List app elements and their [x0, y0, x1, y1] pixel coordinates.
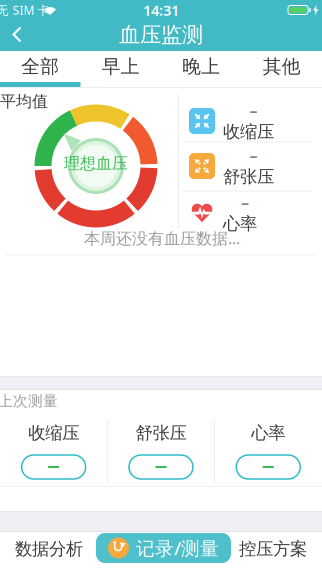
- button[interactable]: 收缩压: [22, 455, 86, 479]
- staticText: 理想血压: [64, 154, 128, 173]
- staticText: 平均值: [0, 92, 48, 111]
- staticText: 记录/测量: [136, 536, 219, 560]
- staticText: 舒张压: [135, 422, 186, 444]
- button[interactable]: 其他: [241, 51, 322, 82]
- staticText: 本周还没有血压数据...: [84, 227, 240, 249]
- staticText: 上次测量: [0, 392, 58, 410]
- staticText: 数据分析: [15, 538, 83, 560]
- button[interactable]: 晚上: [161, 51, 241, 82]
- staticText: 收缩压: [223, 121, 274, 142]
- staticText: 14:31: [143, 0, 179, 20]
- button[interactable]: 心率: [236, 455, 300, 479]
- staticText: 早上: [102, 55, 140, 78]
- button[interactable]: Back: [0, 20, 34, 49]
- button[interactable]: 早上: [80, 51, 161, 82]
- staticText: –: [249, 145, 257, 166]
- staticText: 无 SIM 卡: [0, 2, 49, 18]
- button[interactable]: 全部: [0, 51, 80, 82]
- staticText: 晚上: [182, 55, 220, 78]
- staticText: –: [249, 100, 257, 121]
- button[interactable]: 控压方案: [228, 529, 318, 569]
- staticText: 血压监测: [119, 22, 203, 48]
- button[interactable]: 记录/测量: [96, 533, 231, 563]
- staticText: 心率: [223, 213, 257, 234]
- button[interactable]: 舒张压: [129, 455, 193, 479]
- button[interactable]: 数据分析: [4, 529, 94, 569]
- staticText: 心率: [251, 422, 285, 444]
- staticText: 控压方案: [239, 538, 307, 560]
- staticText: 全部: [21, 55, 59, 78]
- staticText: 其他: [263, 55, 301, 78]
- staticText: 收缩压: [28, 422, 79, 444]
- staticText: –: [241, 192, 249, 213]
- staticText: 舒张压: [223, 166, 274, 187]
